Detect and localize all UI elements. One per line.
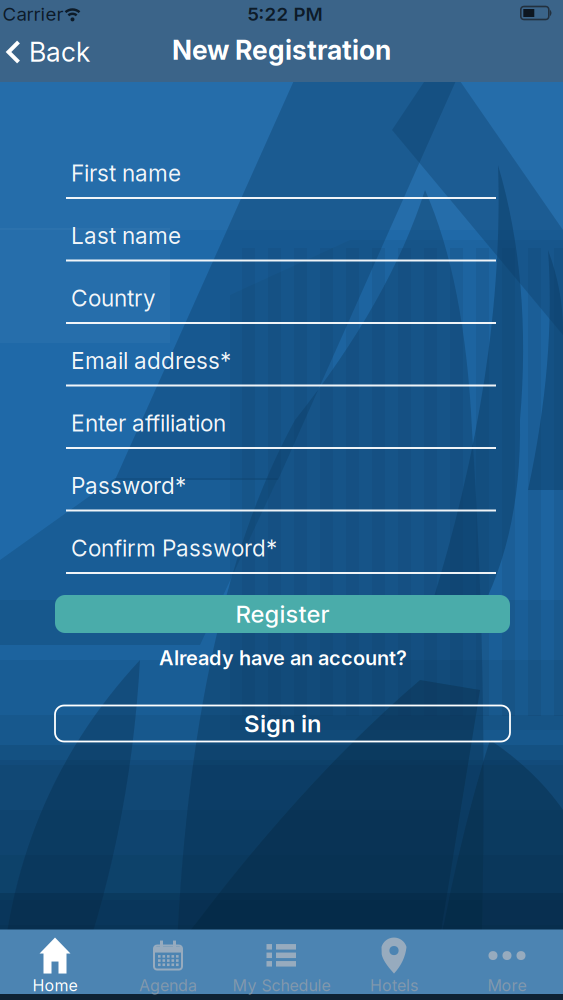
staticText: 5:22 PM [247, 3, 322, 25]
button[interactable]: Last name [66, 222, 496, 261]
button[interactable]: Email address* [66, 347, 496, 386]
staticText: Enter affiliation [71, 410, 226, 437]
button[interactable]: Confirm Password* [66, 535, 496, 574]
staticText: Confirm Password* [71, 535, 277, 562]
staticText: Home [32, 976, 77, 995]
button[interactable]: Agenda [112, 934, 224, 998]
staticText: Agenda [139, 976, 197, 995]
button[interactable]: Sign in [55, 705, 510, 741]
button[interactable]: Home [0, 934, 111, 998]
button[interactable]: Back [6, 36, 90, 68]
staticText: Already have an account? [159, 646, 407, 670]
button[interactable]: Register [55, 595, 510, 633]
staticText: Password* [71, 472, 186, 499]
staticText: Last name [71, 222, 181, 249]
button[interactable]: Password* [66, 472, 496, 511]
staticText: New Registration [172, 34, 391, 66]
staticText: Register [235, 600, 329, 628]
staticText: Hotels [370, 976, 418, 995]
button[interactable]: Enter affiliation [66, 410, 496, 449]
button[interactable]: More [451, 934, 563, 998]
staticText: Carrier [2, 3, 63, 25]
staticText: More [487, 976, 526, 995]
button[interactable]: Country [66, 285, 496, 324]
staticText: Sign in [244, 709, 321, 738]
staticText: First name [71, 160, 181, 187]
staticText: Back [29, 36, 90, 68]
button[interactable]: Hotels [338, 934, 450, 998]
staticText: Email address* [71, 347, 231, 374]
staticText: My Schedule [232, 976, 330, 995]
button[interactable]: First name [66, 160, 496, 199]
button[interactable]: My Schedule [225, 934, 337, 998]
staticText: Country [71, 285, 156, 312]
